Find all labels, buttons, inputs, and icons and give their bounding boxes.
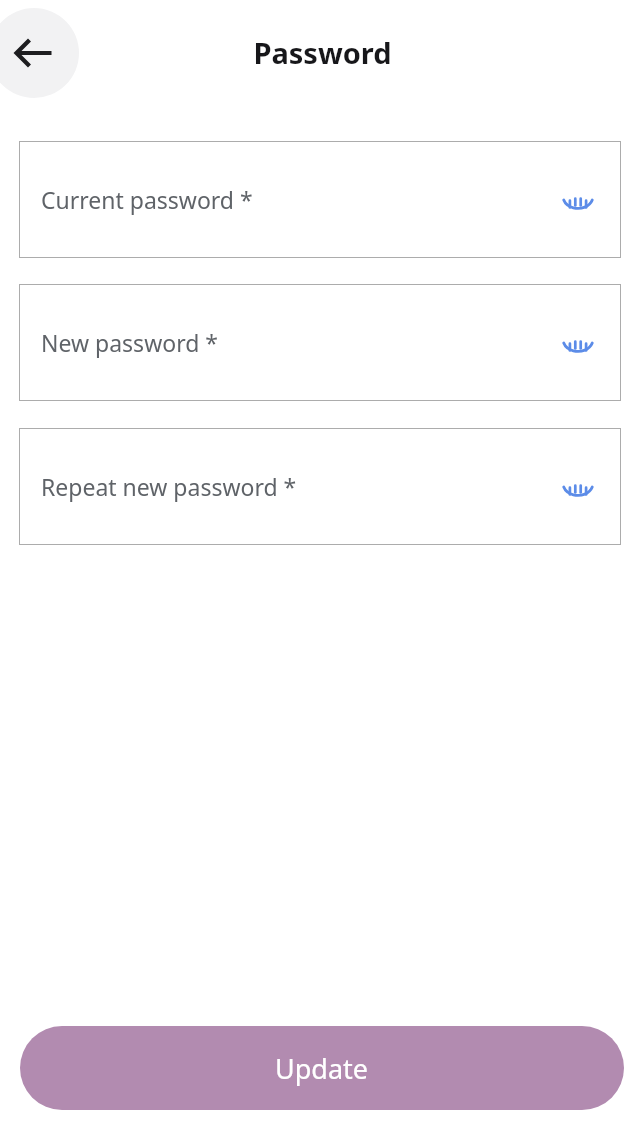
button[interactable]: Show password: [556, 321, 600, 365]
button[interactable]: Current password *: [19, 141, 621, 258]
staticText: Update: [275, 1050, 369, 1087]
button[interactable]: Back: [0, 8, 79, 98]
staticText: New password *: [41, 327, 218, 358]
button[interactable]: New password *: [19, 284, 621, 401]
button[interactable]: Repeat new password *: [19, 428, 621, 545]
staticText: Current password *: [41, 184, 253, 215]
button[interactable]: Show password: [556, 178, 600, 222]
staticText: Password: [253, 33, 392, 72]
staticText: Repeat new password *: [41, 471, 297, 502]
button[interactable]: Show password: [556, 465, 600, 509]
button[interactable]: Update: [20, 1026, 624, 1110]
